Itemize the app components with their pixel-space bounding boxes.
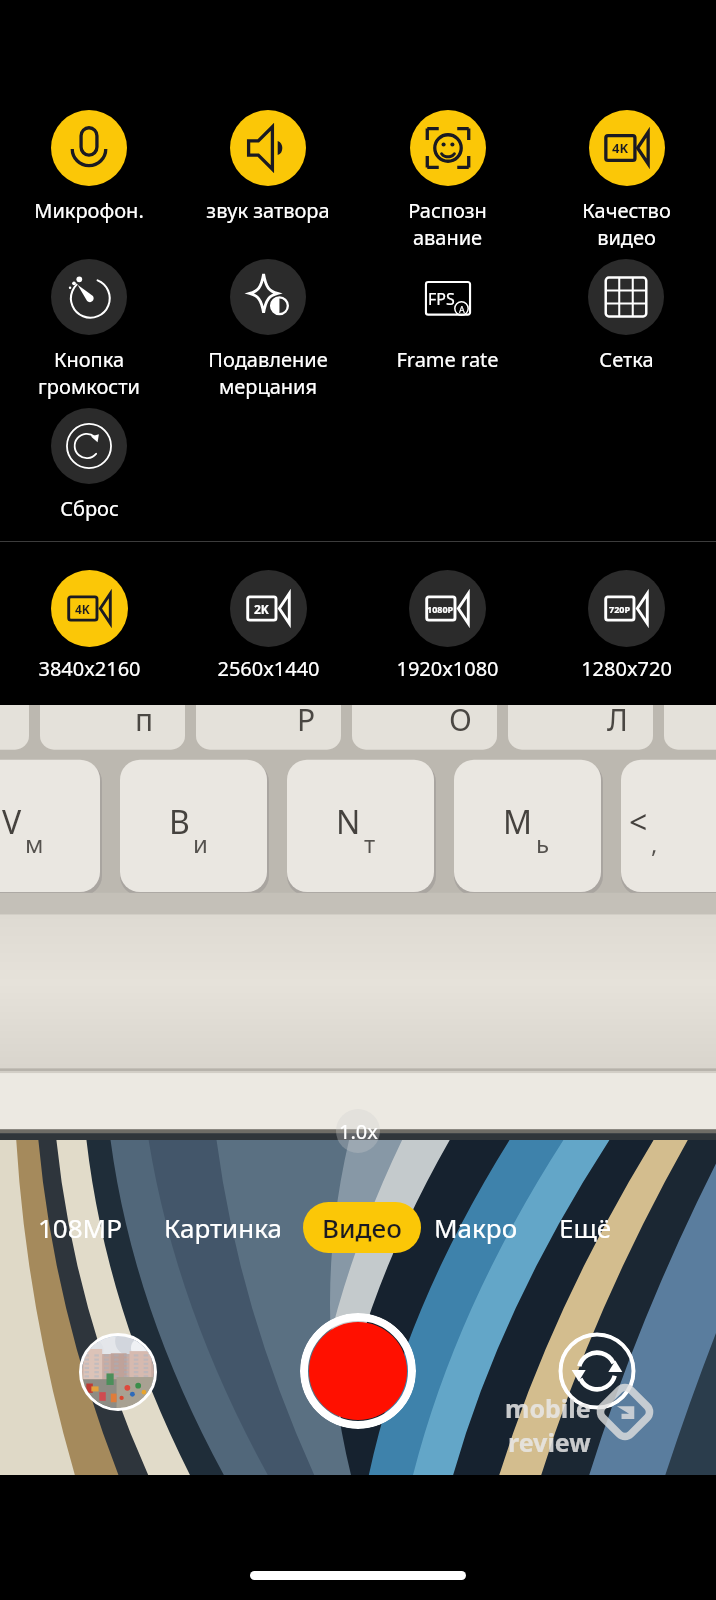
staticText: Frame rate (396, 346, 499, 373)
button[interactable]: Распозн авание (358, 110, 536, 250)
staticText: Сброс (60, 495, 119, 522)
button[interactable]: Ещё (559, 1210, 612, 1245)
button[interactable]: 108MP (38, 1210, 122, 1245)
button[interactable]: Сброс (0, 408, 178, 548)
button[interactable]: звук затвора (179, 110, 357, 250)
button[interactable]: Подавление мерцания (179, 259, 357, 399)
staticText: < (629, 800, 648, 844)
button[interactable]: 2K (179, 570, 357, 700)
staticText: Л (607, 705, 628, 740)
button[interactable]: Сетка (537, 259, 715, 399)
staticText: 4K (75, 601, 90, 617)
staticText: B (169, 800, 190, 844)
staticText: и (193, 827, 208, 860)
staticText: Ещё (559, 1210, 612, 1245)
staticText: mobile (505, 1391, 591, 1425)
staticText: 4K (612, 139, 629, 157)
staticText: 1280x720 (581, 655, 672, 682)
staticText: Подавление мерцания (208, 346, 328, 399)
staticText: Р (297, 705, 316, 740)
staticText: м (25, 827, 44, 860)
staticText: Качество видео (582, 197, 671, 250)
staticText: Видео (322, 1210, 402, 1245)
button[interactable]: Видео (303, 1202, 421, 1253)
staticText: 1.0x (339, 1118, 378, 1145)
button[interactable]: Картинка (164, 1210, 282, 1245)
staticText: т (364, 827, 376, 860)
staticText: п (135, 705, 154, 740)
staticText: FPS (428, 288, 455, 310)
staticText: M (503, 800, 533, 844)
button[interactable]: 720P (537, 570, 715, 700)
button[interactable]: 1080P (358, 570, 536, 700)
button[interactable]: Switch camera (558, 1332, 636, 1410)
staticText: 3840x2160 (38, 655, 141, 682)
button[interactable]: 4K (537, 110, 715, 250)
staticText: звук затвора (206, 197, 330, 224)
staticText: Картинка (164, 1210, 282, 1245)
staticText: О (449, 705, 472, 740)
button[interactable]: 4K (0, 570, 178, 700)
button[interactable]: Микрофон. (0, 110, 178, 250)
staticText: Распозн авание (408, 197, 487, 250)
button[interactable]: Кнопка громкости (0, 259, 178, 399)
staticText: Кнопка громкости (38, 346, 140, 399)
staticText: 2K (254, 601, 269, 617)
staticText: 1080P (427, 603, 454, 615)
staticText: , (651, 827, 658, 860)
staticText: V (2, 800, 22, 844)
staticText: ь (536, 827, 550, 860)
staticText: review (508, 1425, 591, 1459)
staticText: 720P (609, 603, 631, 615)
staticText: Сетка (599, 346, 654, 373)
button[interactable]: Record video (300, 1313, 416, 1429)
staticText: 108MP (38, 1210, 122, 1245)
button[interactable]: Макро (434, 1210, 518, 1245)
staticText: Макро (434, 1210, 518, 1245)
button[interactable]: FPS (358, 259, 536, 399)
staticText: A (459, 303, 465, 315)
button[interactable]: Gallery (79, 1333, 157, 1411)
staticText: N (336, 800, 361, 844)
button[interactable]: Zoom level 1.0x (336, 1109, 380, 1153)
staticText: Микрофон. (34, 197, 144, 224)
staticText: 2560x1440 (217, 655, 320, 682)
staticText: 1920x1080 (396, 655, 499, 682)
